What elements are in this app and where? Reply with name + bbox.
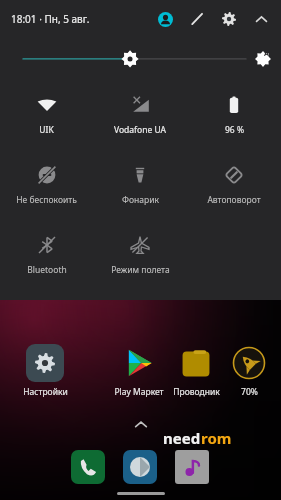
button[interactable]: Не беспокоить (0, 150, 93, 220)
button[interactable]: 96 % (187, 80, 281, 150)
button[interactable]: User (154, 8, 176, 30)
button[interactable]: Режим полета (93, 220, 187, 290)
button[interactable]: Edit (186, 8, 208, 30)
staticText: Не беспокоить (16, 194, 77, 206)
button[interactable]: Brightness (0, 38, 281, 74)
staticText: Bluetooth (27, 264, 67, 276)
button[interactable]: UIK (0, 80, 93, 150)
button[interactable]: Settings (218, 8, 240, 30)
button[interactable]: Автоповорот (187, 150, 281, 220)
button[interactable]: Bluetooth (0, 220, 93, 290)
button[interactable]: Проводник (168, 344, 224, 398)
button[interactable]: Фонарик (93, 150, 187, 220)
staticText: Play Маркет (114, 386, 164, 398)
button[interactable]: 70% (226, 344, 272, 398)
button[interactable]: Music (175, 450, 209, 484)
button[interactable]: Browser (123, 450, 157, 484)
staticText: A (264, 49, 269, 59)
button[interactable]: Play Маркет (108, 344, 170, 398)
staticText: 70% (241, 386, 258, 398)
button[interactable]: Open app drawer (130, 414, 152, 436)
button[interactable]: Настройки (14, 344, 76, 398)
staticText: Режим полета (111, 264, 170, 276)
staticText: 96 % (225, 124, 244, 136)
button[interactable]: Vodafone UA (93, 80, 187, 150)
staticText: need (163, 428, 201, 448)
staticText: Автоповорот (207, 194, 261, 206)
button[interactable]: Collapse (250, 8, 272, 30)
staticText: Vodafone UA (114, 124, 166, 136)
staticText: Проводник (173, 386, 220, 398)
button[interactable]: Phone (71, 450, 105, 484)
staticText: Фонарик (122, 194, 159, 206)
staticText: rom (201, 428, 232, 448)
staticText: Настройки (23, 386, 68, 398)
staticText: UIK (39, 124, 54, 136)
staticText: 18:01 · Пн, 5 авг. (11, 12, 90, 26)
